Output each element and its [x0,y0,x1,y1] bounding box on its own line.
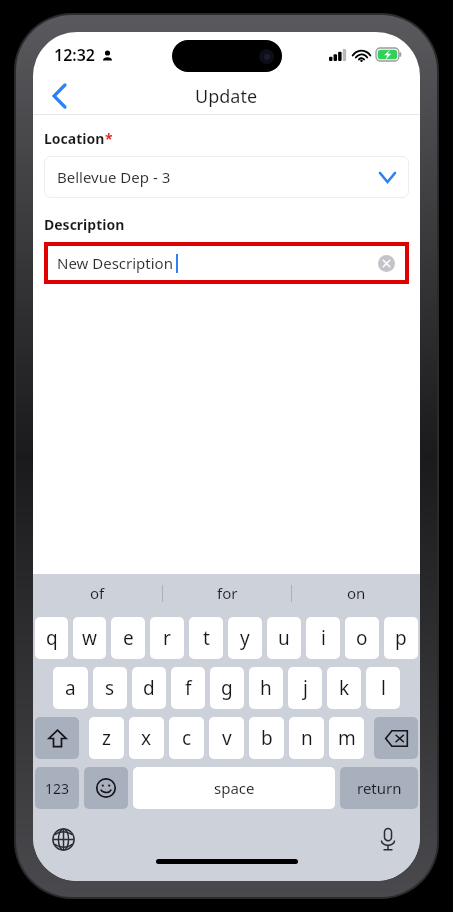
button[interactable]: p [384,617,418,659]
button[interactable]: q [35,617,68,659]
staticText: 123 [45,779,70,798]
staticText: space [214,778,255,798]
staticText: Description [44,215,125,234]
button[interactable]: Shift [35,717,79,759]
button[interactable]: for [163,574,291,612]
staticText: * [105,129,113,148]
staticText: r [163,625,171,651]
button[interactable]: space [133,767,335,809]
staticText: Location [44,129,105,148]
button[interactable]: v [209,717,244,759]
button[interactable]: 123 [35,767,79,809]
staticText: Update [195,84,258,109]
staticText: c [182,725,192,751]
button[interactable]: New Description [44,242,409,284]
staticText: m [338,725,356,751]
staticText: h [260,675,272,701]
button[interactable]: a [53,667,88,709]
button[interactable]: m [329,717,364,759]
staticText: v [222,725,232,751]
button[interactable]: e [111,617,145,659]
button[interactable]: Bellevue Dep - 3 [44,156,409,198]
button[interactable]: w [73,617,106,659]
button[interactable]: on [292,574,420,612]
button[interactable]: Delete [374,717,418,759]
button[interactable]: o [345,617,379,659]
staticText: z [102,725,111,751]
button[interactable]: c [169,717,204,759]
button[interactable]: r [150,617,184,659]
button[interactable]: s [93,667,127,709]
button[interactable]: Back [39,77,79,115]
button[interactable]: f [171,667,205,709]
staticText: s [105,675,115,701]
staticText: l [381,675,386,701]
staticText: u [278,625,290,651]
button[interactable]: z [89,717,124,759]
button[interactable]: u [267,617,301,659]
button[interactable]: g [210,667,244,709]
button[interactable]: Change keyboard [47,823,79,855]
staticText: p [395,625,407,651]
button[interactable]: l [366,667,400,709]
staticText: a [65,675,76,701]
button[interactable]: b [249,717,284,759]
button[interactable]: return [340,767,418,809]
staticText: return [357,778,402,798]
button[interactable]: i [306,617,340,659]
button[interactable]: y [228,617,262,659]
staticText: f [185,675,192,701]
staticText: d [143,675,155,701]
staticText: t [203,625,210,651]
staticText: 12:32 [54,44,96,66]
button[interactable]: Emoji [84,767,128,809]
button[interactable]: x [129,717,164,759]
staticText: x [141,725,152,751]
staticText: on [347,583,366,603]
button[interactable]: k [327,667,361,709]
staticText: for [217,583,238,603]
staticText: Bellevue Dep - 3 [57,167,171,187]
staticText: w [82,625,97,651]
staticText: o [356,625,368,651]
staticText: of [90,583,105,603]
button[interactable]: t [189,617,223,659]
button[interactable]: h [249,667,283,709]
staticText: b [261,725,273,751]
staticText: e [123,625,134,651]
staticText: j [303,675,308,701]
staticText: y [240,625,250,651]
staticText: i [321,625,326,651]
staticText: n [301,725,313,751]
staticText: New Description [57,253,173,273]
button[interactable]: n [289,717,324,759]
staticText: q [46,625,58,651]
button[interactable]: Clear text [378,255,395,272]
button[interactable]: j [288,667,322,709]
button[interactable]: d [132,667,166,709]
staticText: g [221,675,233,701]
button[interactable]: of [33,574,162,612]
button[interactable]: Dictation [372,823,404,855]
staticText: k [339,675,350,701]
